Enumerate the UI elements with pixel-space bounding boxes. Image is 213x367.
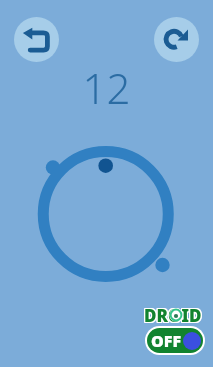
button[interactable]: OFF	[147, 328, 203, 353]
button[interactable]: Redo	[154, 17, 199, 62]
staticText: DROID	[143, 303, 201, 326]
button[interactable]: Undo	[14, 17, 59, 62]
staticText: DROID	[144, 305, 202, 328]
staticText: DROID	[144, 303, 202, 326]
staticText: OFF	[151, 330, 182, 352]
staticText: DROID	[145, 304, 203, 327]
staticText: DROID	[145, 303, 203, 326]
staticText: DROID	[145, 305, 203, 328]
button[interactable]: Dial	[33, 141, 179, 287]
staticText: DROID	[143, 305, 201, 328]
staticText: DROID	[144, 304, 202, 327]
staticText: DROID	[143, 304, 201, 327]
staticText: 12	[0, 59, 213, 367]
